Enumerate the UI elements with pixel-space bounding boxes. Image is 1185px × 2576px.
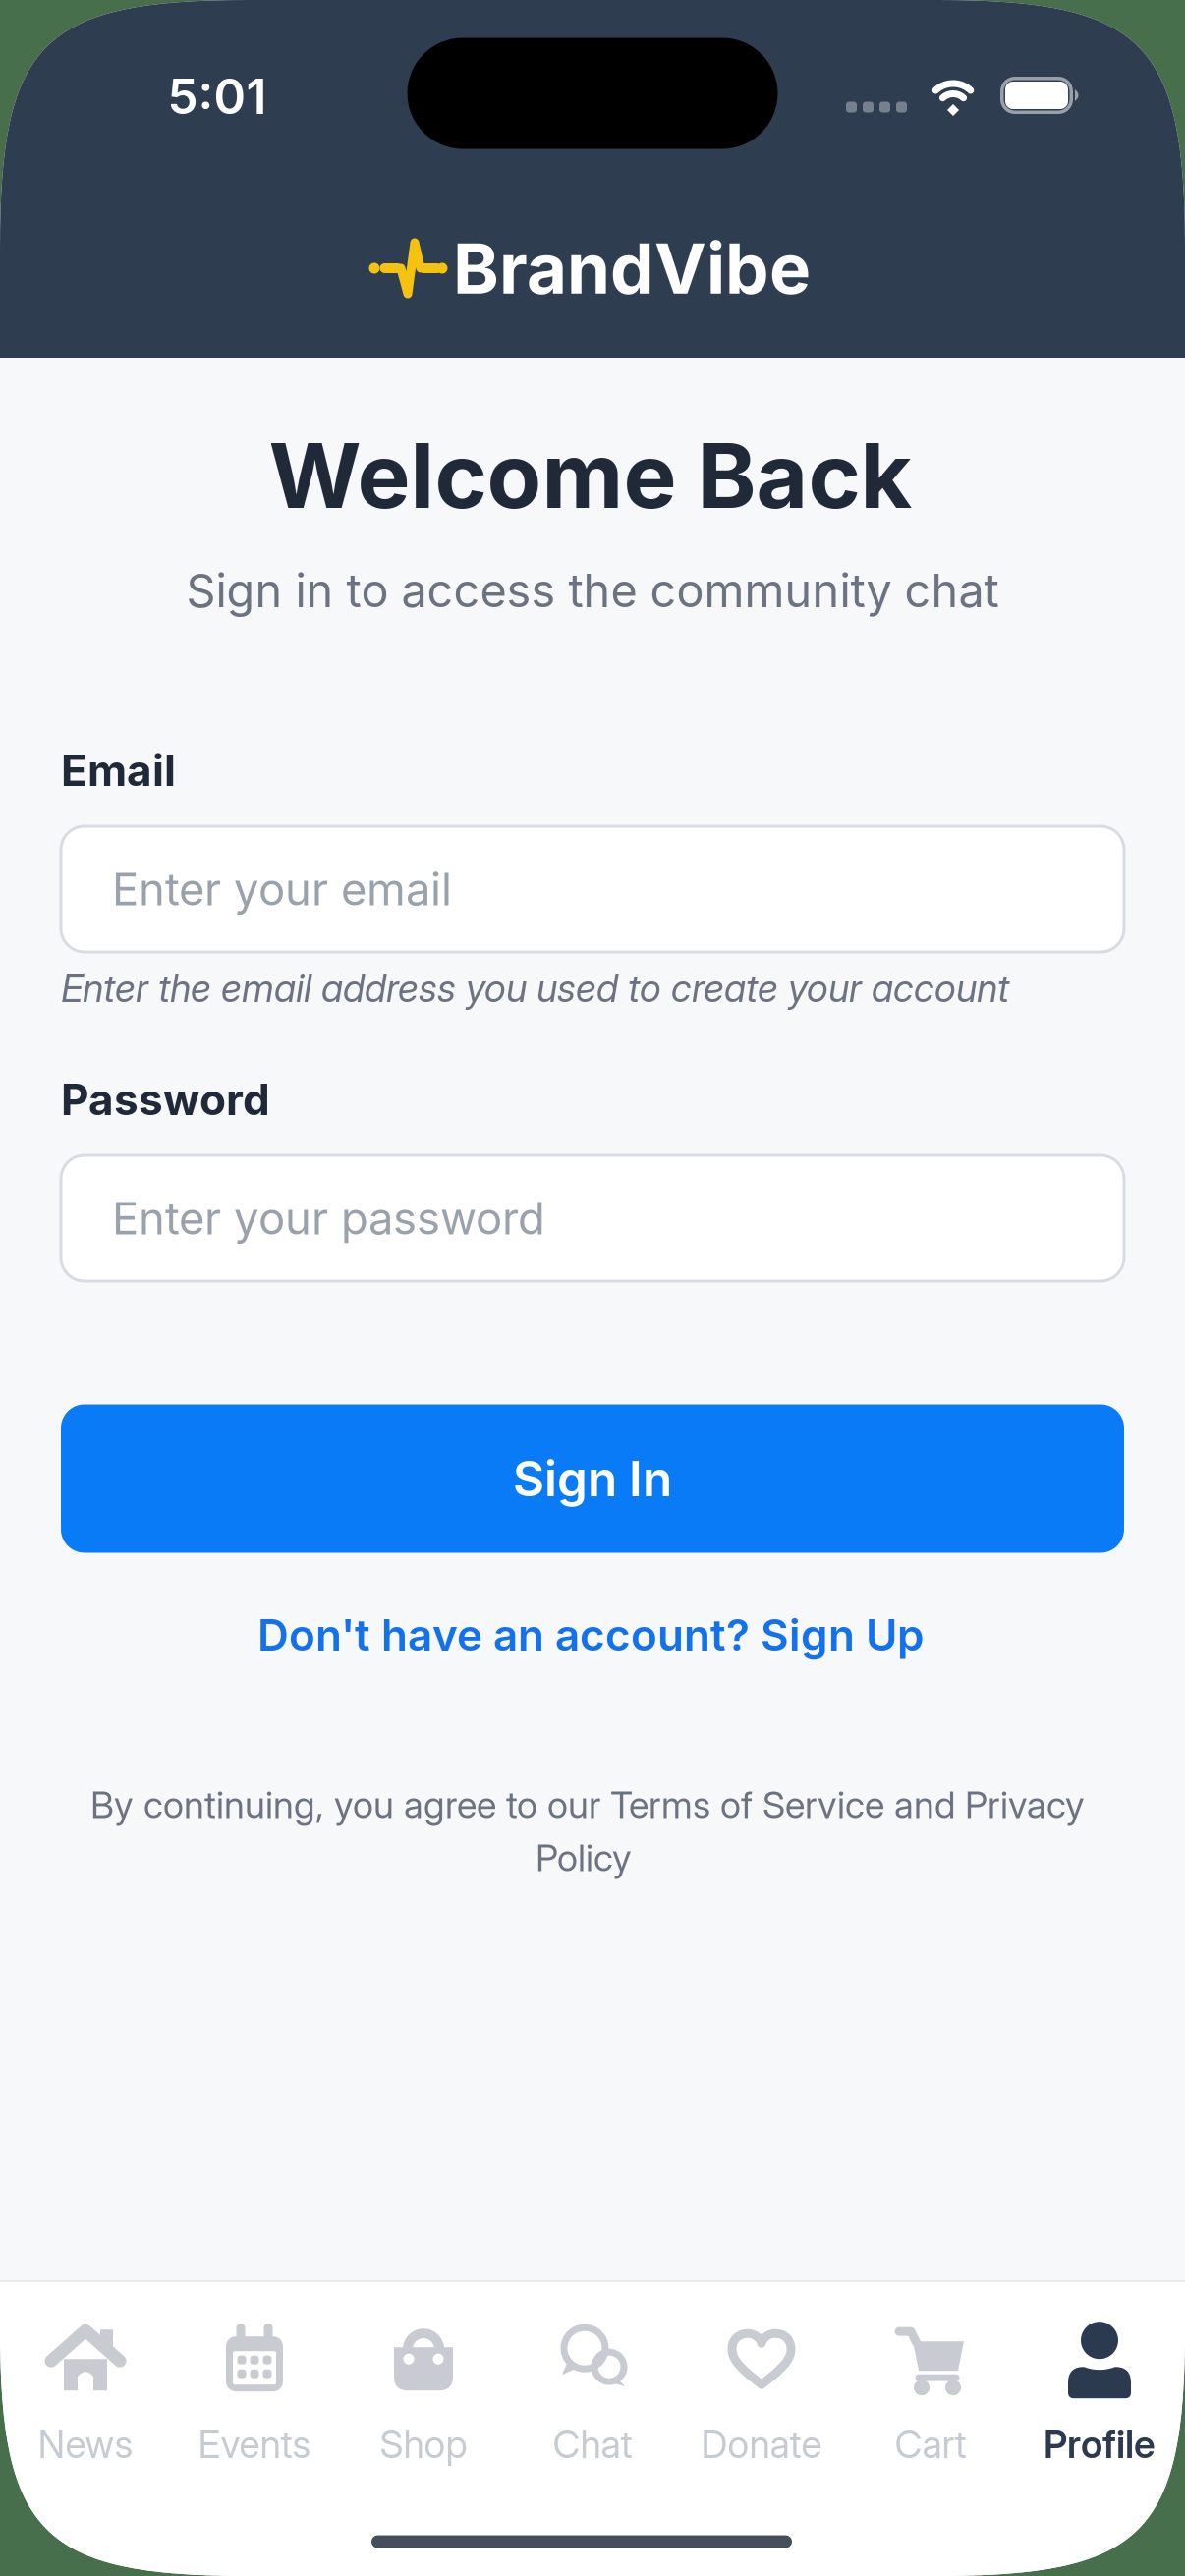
staticText: Profile [1044,2422,1156,2467]
staticText: News [38,2422,133,2467]
button[interactable]: Profile [1015,2299,1184,2484]
staticText: Email [61,745,176,796]
button[interactable]: Chat [508,2299,677,2484]
staticText: Enter your email [112,863,452,915]
staticText: Chat [553,2422,632,2467]
staticText: Events [198,2422,311,2467]
staticText: BrandVibe [453,227,811,309]
button[interactable]: Don't have an account? Sign Up [257,1609,924,1660]
staticText: Welcome Back [269,423,912,528]
staticText: Shop [380,2422,467,2467]
button[interactable]: Events [170,2299,339,2484]
staticText: Don't have an account? Sign Up [257,1609,924,1660]
button[interactable]: Donate [677,2299,846,2484]
staticText: Enter your password [112,1192,545,1245]
staticText: Sign in to access the community chat [186,563,999,618]
staticText: By continuing, you agree to our Terms of… [90,1783,1085,1826]
staticText: Password [61,1074,270,1125]
button[interactable]: Sign In [61,1404,1124,1553]
button[interactable]: Shop [339,2299,508,2484]
staticText: Policy [536,1836,632,1879]
staticText: Enter the email address you used to crea… [61,966,1009,1011]
staticText: Donate [701,2422,822,2467]
staticText: Sign In [513,1450,672,1507]
staticText: Cart [895,2422,966,2467]
button[interactable]: News [1,2299,170,2484]
button[interactable]: Cart [846,2299,1015,2484]
staticText: 5:01 [168,68,267,125]
